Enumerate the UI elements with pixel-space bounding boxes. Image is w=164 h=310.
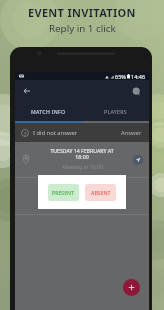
staticText: I did not answer <box>33 129 78 137</box>
staticText: MATCH INFO <box>31 108 66 115</box>
staticText: 65% <box>115 73 126 80</box>
button[interactable]: Directions <box>132 154 143 165</box>
button[interactable]: ABSENT <box>85 184 116 201</box>
button[interactable]: PLAYERS <box>82 102 149 121</box>
staticText: Answer <box>121 129 142 137</box>
staticText: EVENT INVITATION <box>28 5 136 20</box>
staticText: ABSENT <box>91 189 111 196</box>
staticText: PRESENT <box>52 189 75 196</box>
staticText: TUESDAY 14 FEBRUARY AT 18:00 <box>50 147 114 161</box>
button[interactable]: Messages <box>129 84 143 98</box>
staticText: Meeting at 16:00 <box>62 163 103 170</box>
staticText: ? <box>24 130 27 137</box>
button[interactable]: Back <box>20 84 34 98</box>
button[interactable]: MATCH INFO <box>15 102 82 121</box>
button[interactable]: ? <box>15 123 149 142</box>
button[interactable]: PRESENT <box>48 184 79 201</box>
staticText: Available <box>71 193 93 200</box>
staticText: 14:46 <box>131 73 146 80</box>
staticText: PLAYERS <box>104 108 127 115</box>
button[interactable]: Add <box>123 279 140 296</box>
button[interactable]: TUESDAY 14 FEBRUARY AT 18:00 <box>15 142 149 177</box>
staticText: Reply in 1 click <box>49 22 116 35</box>
